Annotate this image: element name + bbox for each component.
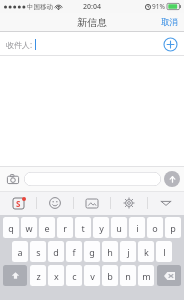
staticText: u [116,222,122,234]
staticText: n [125,270,131,282]
staticText: j [127,246,130,258]
staticText: 新信息 [77,16,107,29]
staticText: 取消 [161,17,178,28]
staticText: x [54,270,59,282]
staticText: a [17,246,23,258]
button[interactable]: Settings [111,191,147,215]
button[interactable]: z [30,265,46,286]
button[interactable]: l [156,241,172,262]
button[interactable]: o [147,217,163,238]
staticText: l [163,246,166,258]
staticText: g [89,246,95,258]
staticText: S [16,198,21,209]
button[interactable]: y [93,217,109,238]
button[interactable]: p [165,217,181,238]
staticText: h [107,246,113,258]
staticText: k [144,246,149,258]
button[interactable]: a [12,241,28,262]
button[interactable]: f [66,241,82,262]
button[interactable]: h [102,241,118,262]
button[interactable]: i [129,217,145,238]
button[interactable]: m [138,265,154,286]
staticText: d [53,246,59,258]
button[interactable]: u [111,217,127,238]
button[interactable]: r [57,217,73,238]
button[interactable]: d [48,241,64,262]
button[interactable]: n [120,265,136,286]
button[interactable]: Shift [3,265,27,286]
staticText: b [107,270,113,282]
staticText: q [8,222,14,234]
staticText: i [136,222,139,234]
button[interactable]: t [75,217,91,238]
button[interactable]: e [39,217,55,238]
staticText: m [142,270,151,282]
button[interactable]: k [138,241,154,262]
button[interactable]: Sogou input [0,191,36,215]
staticText: t [81,222,85,234]
button[interactable]: Backspace [157,265,181,286]
button[interactable]: x [48,265,64,286]
button[interactable]: Emoji [37,191,73,215]
staticText: o [152,222,158,234]
button[interactable]: Camera [4,170,21,187]
staticText: v [90,270,95,282]
button[interactable]: b [102,265,118,286]
button[interactable]: Add contact [163,37,178,52]
button[interactable]: j [120,241,136,262]
staticText: w [25,222,33,234]
button[interactable]: g [84,241,100,262]
button[interactable]: c [66,265,82,286]
staticText: 91% [152,2,165,11]
button[interactable]: 取消 [155,13,184,32]
button[interactable]: q [3,217,19,238]
button[interactable] [24,172,161,186]
button[interactable]: Stickers [74,191,110,215]
button[interactable]: Send [164,171,180,187]
staticText: e [44,222,50,234]
staticText: s [36,246,41,258]
staticText: z [36,270,41,282]
staticText: f [72,246,76,258]
button[interactable]: w [21,217,37,238]
button[interactable]: v [84,265,100,286]
staticText: 中国移动 [27,3,53,11]
staticText: y [99,222,104,234]
staticText: c [72,270,77,282]
button[interactable]: Hide keyboard [148,191,184,215]
staticText: r [63,222,67,234]
staticText: p [170,222,176,234]
staticText: 20:04 [83,2,101,12]
staticText: 收件人: [6,39,33,50]
button[interactable]: s [30,241,46,262]
